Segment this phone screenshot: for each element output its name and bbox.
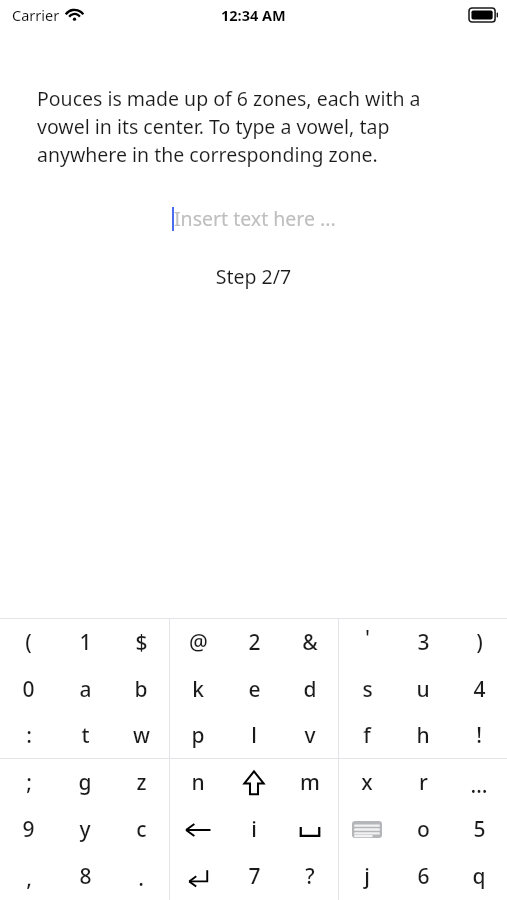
button[interactable]: 2 (226, 619, 282, 666)
staticText: : (26, 721, 32, 750)
staticText: ( (25, 628, 32, 657)
button[interactable]: b (113, 666, 169, 712)
button[interactable]: j (339, 853, 395, 900)
staticText: 5 (473, 815, 486, 844)
button[interactable]: Backspace (170, 806, 226, 853)
staticText: k (192, 675, 204, 704)
button[interactable]: u (395, 666, 451, 712)
staticText: n (191, 768, 205, 797)
button[interactable]: 3 (395, 619, 451, 666)
staticText: p (191, 721, 205, 750)
button[interactable]: n (170, 759, 226, 806)
button[interactable]: d (282, 666, 338, 712)
staticText: c (136, 815, 147, 844)
staticText: … (470, 771, 488, 800)
button[interactable]: s (339, 666, 395, 712)
button[interactable]: 7 (226, 853, 282, 900)
staticText: 7 (248, 862, 261, 891)
staticText: 12:34 AM (221, 5, 286, 25)
staticText: Step 2/7 (0, 263, 507, 290)
other: Enter (187, 867, 209, 887)
staticText: x (361, 768, 373, 797)
button[interactable]: $ (113, 619, 169, 666)
staticText: a (79, 675, 92, 704)
button[interactable]: x (339, 759, 395, 806)
button[interactable]: 1 (57, 619, 113, 666)
button[interactable]: t (57, 712, 113, 758)
button[interactable]: e (226, 666, 282, 712)
staticText: d (303, 675, 317, 704)
staticText: 2 (248, 628, 261, 657)
staticText: ! (476, 721, 482, 750)
button[interactable]: @ (170, 619, 226, 666)
button[interactable]: k (170, 666, 226, 712)
button[interactable]: 9 (0, 806, 57, 853)
staticText: 0 (22, 675, 35, 704)
staticText: z (136, 768, 147, 797)
staticText: t (81, 721, 90, 750)
button[interactable]: q (451, 853, 507, 900)
button[interactable]: 4 (451, 666, 507, 712)
staticText: r (419, 768, 428, 797)
button[interactable]: 6 (395, 853, 451, 900)
button[interactable]: ) (451, 619, 507, 666)
staticText: s (362, 675, 373, 704)
staticText: u (416, 675, 430, 704)
staticText: 4 (473, 675, 486, 704)
button[interactable]: ! (451, 712, 507, 758)
button[interactable]: c (113, 806, 169, 853)
staticText: Pouces is made up of 6 zones, each with … (37, 85, 474, 168)
button[interactable]: : (0, 712, 57, 758)
button[interactable]: … (451, 759, 507, 806)
button[interactable]: 0 (0, 666, 57, 712)
button[interactable]: v (282, 712, 338, 758)
button[interactable]: y (57, 806, 113, 853)
button[interactable]: m (282, 759, 338, 806)
button[interactable]: p (170, 712, 226, 758)
staticText: b (134, 675, 148, 704)
button[interactable]: ( (0, 619, 57, 666)
button[interactable]: z (113, 759, 169, 806)
staticText: & (302, 628, 318, 657)
other: Space (299, 823, 321, 837)
button[interactable]: g (57, 759, 113, 806)
button[interactable]: l (226, 712, 282, 758)
staticText: o (417, 815, 430, 844)
button[interactable]: ; (0, 759, 57, 806)
staticText: 9 (22, 815, 35, 844)
staticText: 1 (79, 628, 92, 657)
staticText: ; (26, 768, 32, 797)
staticText: h (416, 721, 430, 750)
button[interactable]: h (395, 712, 451, 758)
staticText: e (248, 675, 261, 704)
button[interactable]: o (395, 806, 451, 853)
button[interactable]: w (113, 712, 169, 758)
staticText: ) (476, 628, 483, 657)
staticText: m (300, 768, 320, 797)
other: Backspace (185, 820, 211, 840)
other: Shift (244, 771, 264, 795)
button[interactable]: r (395, 759, 451, 806)
button[interactable]: ? (282, 853, 338, 900)
button[interactable]: Shift (226, 759, 282, 806)
button[interactable]: 8 (57, 853, 113, 900)
button[interactable]: , (0, 853, 57, 900)
button[interactable]: 5 (451, 806, 507, 853)
staticText: Carrier (12, 5, 60, 25)
button[interactable]: f (339, 712, 395, 758)
button[interactable]: i (226, 806, 282, 853)
button[interactable]: Switch keyboard (339, 806, 395, 853)
staticText: 6 (417, 862, 430, 891)
button[interactable]: . (113, 853, 169, 900)
button[interactable]: a (57, 666, 113, 712)
button[interactable]: Enter (170, 853, 226, 900)
staticText: v (304, 721, 316, 750)
staticText: w (133, 721, 150, 750)
button[interactable]: & (282, 619, 338, 666)
staticText: q (472, 862, 486, 891)
button[interactable]: ' (339, 619, 395, 666)
button[interactable]: Insert text here ... (0, 201, 507, 235)
button[interactable]: Space (282, 806, 338, 853)
staticText: 8 (79, 862, 92, 891)
staticText: 3 (417, 628, 430, 657)
